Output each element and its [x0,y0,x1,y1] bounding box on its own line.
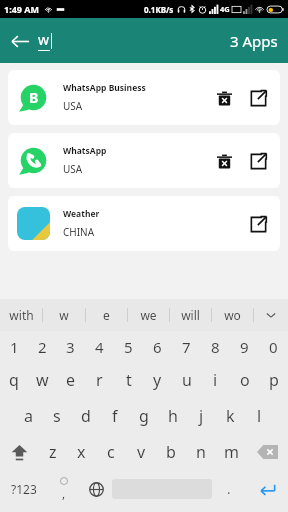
button[interactable]: Shift [0,434,38,470]
staticText: 1 [10,337,19,357]
button[interactable]: e [86,299,127,331]
button[interactable]: q [0,362,28,398]
staticText: CHINA [63,225,95,239]
button[interactable]: g [129,398,158,434]
button[interactable]: f [100,398,129,434]
staticText: n [196,441,206,463]
button[interactable]: t [114,362,143,398]
button[interactable]: s [42,398,71,434]
button[interactable]: 1 [0,331,28,362]
button[interactable]: e [56,362,85,398]
button[interactable]: 2 [28,331,56,362]
staticText: 4 [95,337,104,357]
staticText: B [29,88,39,107]
staticText: 6 [153,337,162,357]
staticText: g [139,405,149,427]
staticText: b [166,441,176,463]
button[interactable]: 8 [201,331,230,362]
button[interactable]: Open [245,211,271,237]
staticText: f [112,405,118,427]
button[interactable]: Back [8,29,32,53]
staticText: h [168,405,178,427]
staticText: z [49,441,57,463]
staticText: y [153,369,162,391]
button[interactable]: wo [212,299,253,331]
staticText: t [126,369,132,391]
button[interactable]: More suggestions [254,299,288,331]
staticText: w [38,30,50,49]
button[interactable]: d [71,398,100,434]
staticText: c [107,441,115,463]
staticText: wo [224,307,241,323]
button[interactable]: a [14,398,42,434]
staticText: 8 [211,337,220,357]
button[interactable]: o [230,362,259,398]
staticText: o [240,369,250,391]
button[interactable]: n [186,434,216,470]
button[interactable]: 7 [172,331,201,362]
staticText: Weather [63,208,100,220]
staticText: d [81,405,91,427]
button[interactable]: l [245,398,274,434]
button[interactable]: . [212,470,246,508]
staticText: s [53,405,61,427]
staticText: WhatsApp Business [63,82,146,94]
button[interactable]: 3 [56,331,85,362]
button[interactable]: v [126,434,156,470]
button[interactable]: k [216,398,245,434]
staticText: v [137,441,146,463]
button[interactable]: will [170,299,211,331]
button[interactable]: Open [245,85,271,111]
button[interactable]: u [172,362,201,398]
staticText: u [182,369,192,391]
button[interactable]: WhatsApp [8,133,280,188]
staticText: m [224,441,239,463]
button[interactable]: Delete [211,85,237,111]
button[interactable]: 6 [143,331,172,362]
button[interactable]: , [48,470,80,508]
button[interactable]: 3 Apps [230,31,278,51]
staticText: with [9,307,34,323]
button[interactable]: we [128,299,169,331]
button[interactable]: x [67,434,96,470]
button[interactable]: 0 [259,331,288,362]
button[interactable]: 9 [230,331,259,362]
button[interactable]: w [43,299,85,331]
button[interactable]: Delete [211,148,237,174]
button[interactable]: r [85,362,114,398]
staticText: 1:49 AM [4,3,40,15]
button[interactable]: Enter [246,470,288,508]
button[interactable]: i [201,362,230,398]
staticText: USA [63,99,83,113]
staticText: 7 [182,337,191,357]
button[interactable]: j [187,398,216,434]
staticText: l [257,405,262,427]
button[interactable]: Open [245,148,271,174]
staticText: 5 [124,337,133,357]
button[interactable]: c [96,434,126,470]
button[interactable]: Weather [8,196,280,251]
button[interactable]: 5 [114,331,143,362]
button[interactable]: B [8,70,280,125]
staticText: WhatsApp [63,145,107,157]
button[interactable]: w [28,362,56,398]
button[interactable]: p [259,362,288,398]
button[interactable]: m [216,434,246,470]
button[interactable]: 4 [85,331,114,362]
button[interactable]: h [158,398,187,434]
button[interactable]: z [38,434,67,470]
staticText: ?123 [11,481,37,497]
button[interactable]: ?123 [0,470,48,508]
staticText: USA [63,162,83,176]
button[interactable]: with [0,299,42,331]
staticText: 9 [240,337,249,357]
staticText: p [269,369,279,391]
button[interactable]: b [156,434,186,470]
button[interactable]: Backspace [246,434,288,470]
button[interactable]: Change language [80,470,112,508]
staticText: w [36,369,49,391]
button[interactable]: y [143,362,172,398]
staticText: , [62,485,66,501]
staticText: w [59,307,69,323]
